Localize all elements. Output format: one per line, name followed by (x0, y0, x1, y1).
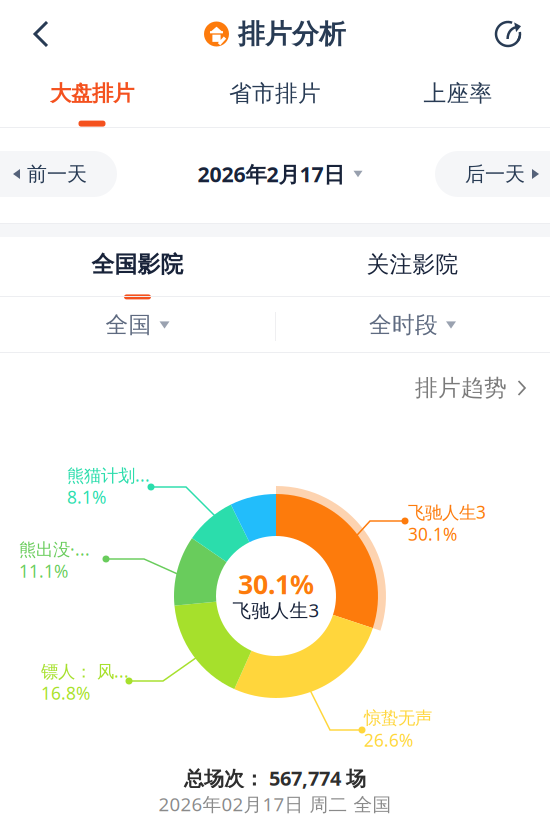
staticText: 总场次： 567,774 场 (184, 765, 366, 791)
staticText: 惊蛰无声 (364, 707, 432, 729)
staticText: 熊出没·... (19, 537, 90, 560)
staticText: 镖人： 风... (41, 659, 129, 682)
staticText: 上座率 (423, 80, 492, 107)
button[interactable]: 全时段 (275, 297, 550, 353)
button[interactable]: 前一天 (0, 151, 117, 197)
button[interactable]: 关注影院 (275, 237, 550, 302)
staticText: 全国影院 (91, 251, 183, 278)
button[interactable]: 全国影院 (0, 237, 275, 302)
button[interactable]: 省市排片 (183, 66, 366, 127)
staticText: 省市排片 (229, 80, 321, 107)
staticText: 2026年02月17日 周二 全国 (158, 792, 391, 816)
button[interactable]: 大盘排片 (0, 66, 183, 127)
staticText: 飞驰人生3 (408, 500, 486, 523)
button[interactable]: 上座率 (366, 66, 549, 127)
staticText: 全时段 (369, 311, 438, 339)
staticText: 16.8% (41, 681, 90, 704)
button[interactable]: 全国 (0, 297, 275, 353)
staticText: 26.6% (364, 728, 413, 751)
button[interactable]: 排片趋势 (391, 367, 550, 409)
staticText: 排片趋势 (415, 374, 507, 402)
staticText: 大盘排片 (50, 80, 134, 107)
button[interactable]: 后一天 (435, 151, 550, 197)
button[interactable]: 返回 (13, 7, 69, 61)
staticText: 8.1% (67, 485, 106, 508)
staticText: 30.1% (238, 566, 314, 602)
staticText: 熊猫计划... (67, 463, 150, 486)
staticText: 2026年2月17日 (197, 160, 344, 188)
button[interactable]: 2026年2月17日 (130, 151, 430, 197)
staticText: 全国 (105, 311, 151, 339)
staticText: 30.1% (408, 522, 457, 545)
staticText: 关注影院 (366, 251, 458, 278)
staticText: 排片分析 (238, 18, 346, 50)
staticText: 飞驰人生3 (232, 598, 319, 622)
staticText: 后一天 (465, 162, 525, 186)
staticText: 11.1% (19, 559, 68, 582)
staticText: 前一天 (27, 162, 87, 186)
button[interactable]: 分享 (481, 7, 537, 61)
